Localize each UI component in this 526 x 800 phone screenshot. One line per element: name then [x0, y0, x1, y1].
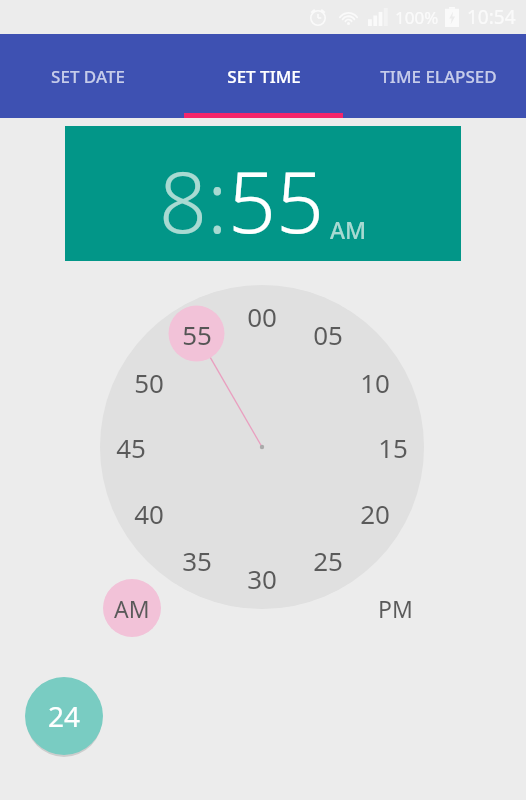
staticText: SET TIME [227, 65, 301, 88]
staticText: 05 [313, 317, 343, 352]
staticText: 10 [360, 365, 390, 400]
staticText: AM [114, 593, 150, 624]
staticText: AM [330, 214, 367, 245]
staticText: 100% [395, 6, 439, 29]
button[interactable]: 45 [105, 429, 157, 465]
staticText: PM [378, 593, 413, 624]
staticText: 35 [182, 543, 212, 578]
button[interactable]: 50 [123, 364, 175, 400]
staticText: 55 [182, 317, 212, 352]
button[interactable]: 30 [236, 560, 288, 596]
button[interactable]: AM [103, 579, 161, 637]
button[interactable]: 10 [349, 364, 401, 400]
staticText: 50 [134, 365, 164, 400]
button[interactable]: 8 [65, 126, 461, 261]
button[interactable]: 20 [349, 495, 401, 531]
staticText: 30 [247, 561, 277, 596]
staticText: 10:54 [467, 4, 516, 30]
button[interactable]: 05 [302, 316, 354, 352]
staticText: 40 [134, 496, 164, 531]
staticText: TIME ELAPSED [380, 65, 497, 88]
staticText: 00 [247, 299, 277, 334]
button[interactable]: Toggle 24 hour mode [25, 677, 103, 755]
staticText: : [207, 143, 228, 257]
staticText: 45 [116, 430, 146, 465]
staticText: 15 [378, 430, 408, 465]
button[interactable]: 25 [302, 542, 354, 578]
button[interactable]: SET DATE [0, 34, 176, 118]
button[interactable]: PM [366, 579, 424, 637]
staticText: 55 [228, 143, 324, 257]
staticText: 20 [360, 496, 390, 531]
button[interactable]: 15 [367, 429, 419, 465]
staticText: 8 [159, 143, 207, 257]
staticText: 24 [48, 697, 81, 735]
button[interactable]: 40 [123, 495, 175, 531]
staticText: 25 [313, 543, 343, 578]
button[interactable]: 00 [236, 298, 288, 334]
button[interactable]: 55 [171, 316, 223, 352]
button[interactable]: SET TIME [176, 34, 351, 118]
staticText: SET DATE [51, 65, 125, 88]
button[interactable]: TIME ELAPSED [351, 34, 526, 118]
button[interactable]: 35 [171, 542, 223, 578]
